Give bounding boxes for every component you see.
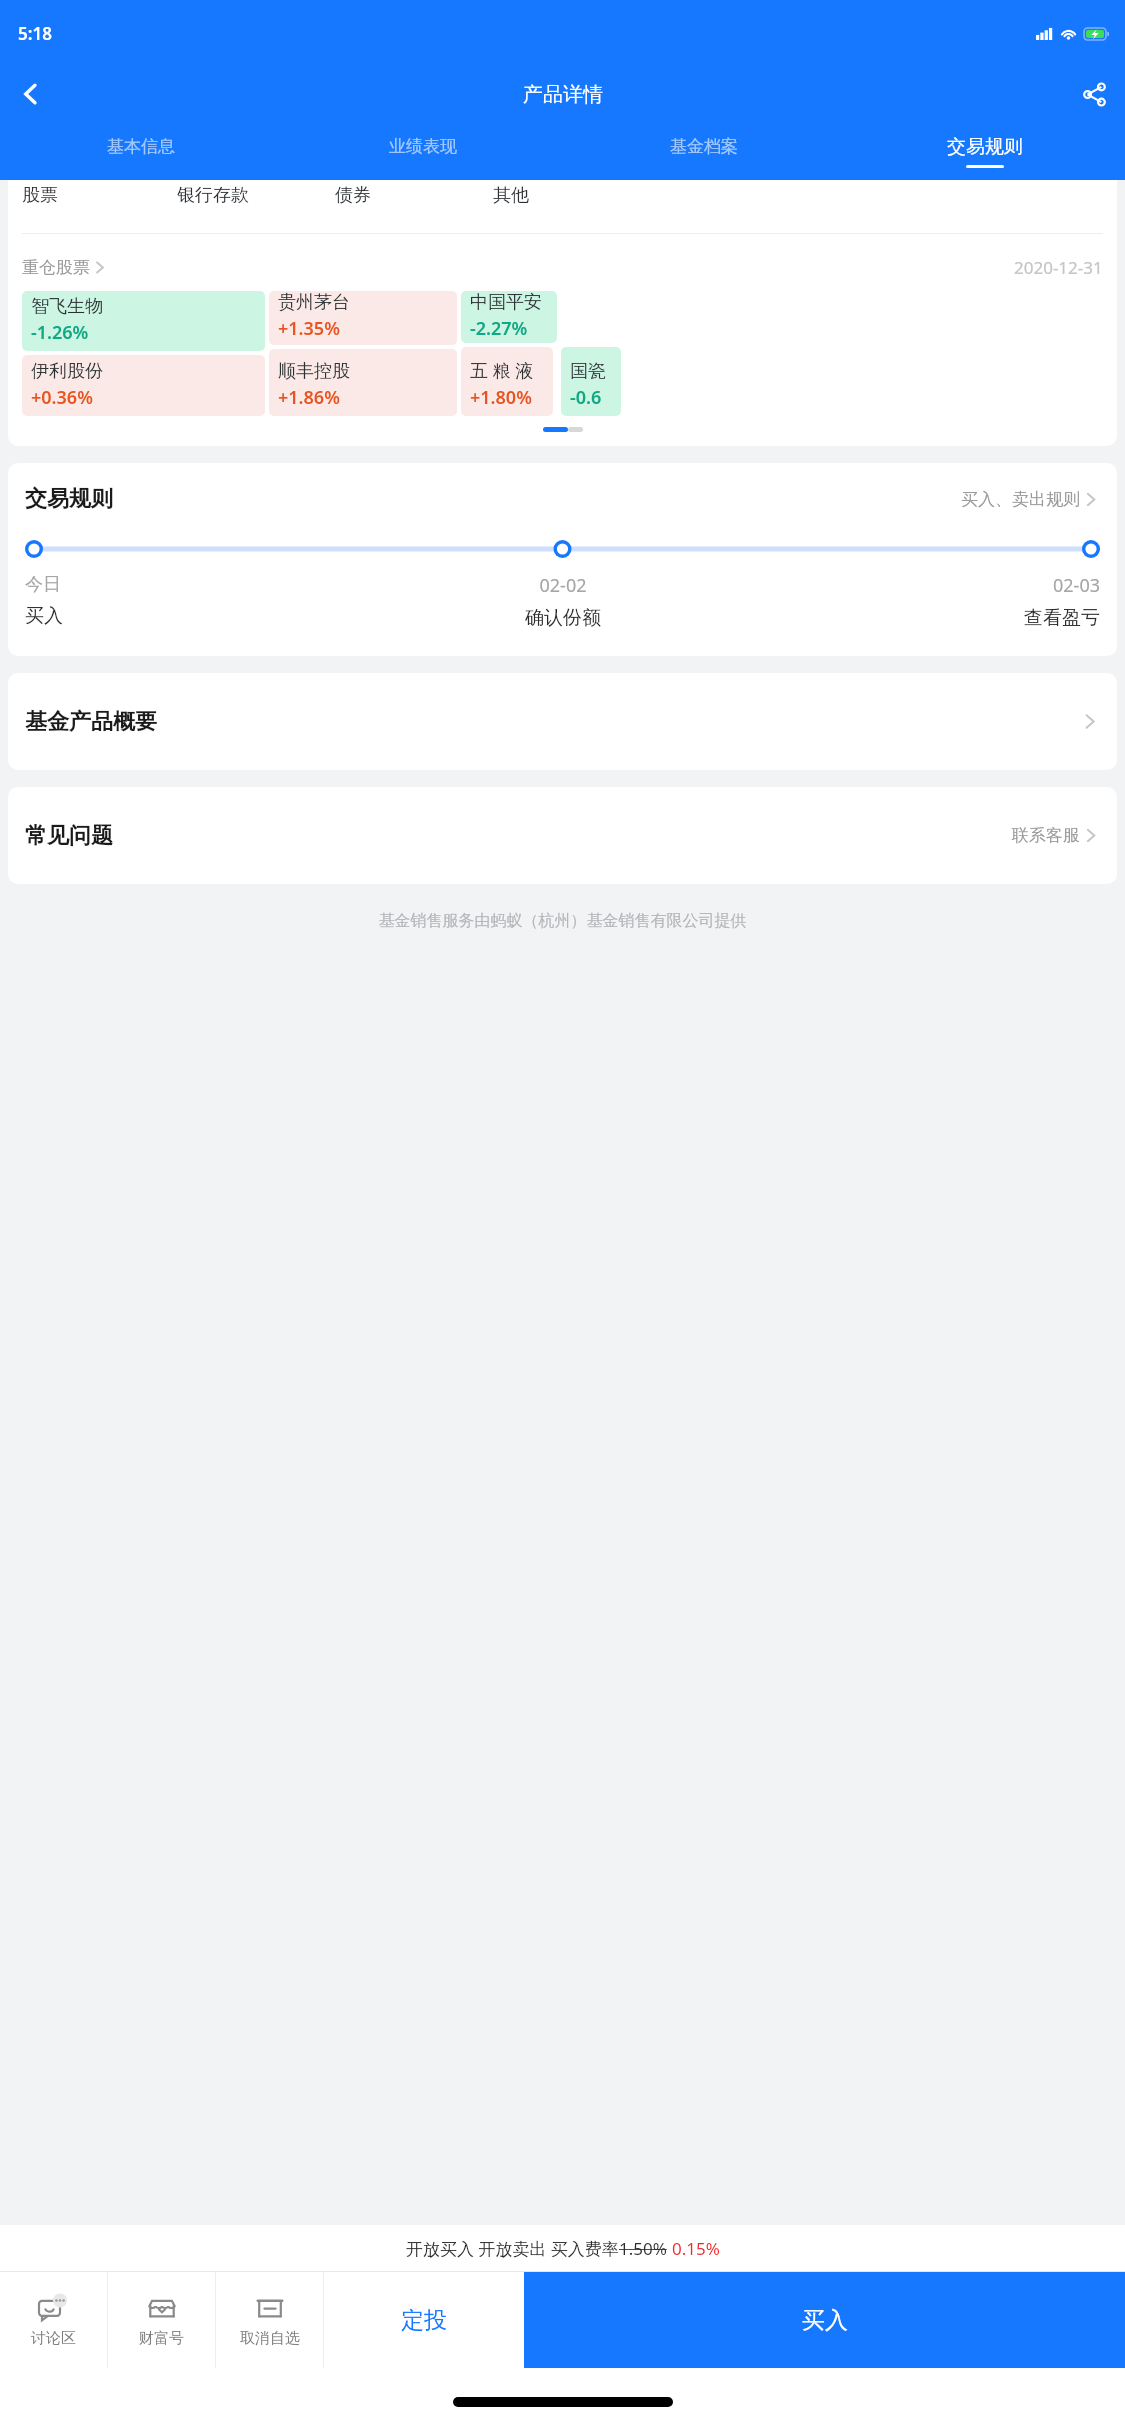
- staticText: 联系客服: [1012, 825, 1080, 846]
- staticText: 重仓股票: [22, 257, 90, 278]
- staticText: 讨论区: [31, 2329, 76, 2348]
- button[interactable]: 财富号: [108, 2272, 215, 2368]
- staticText: -2.27%: [470, 316, 528, 337]
- button[interactable]: 国瓷: [561, 347, 621, 416]
- staticText: 财富号: [139, 2329, 184, 2348]
- staticText: 取消自选: [240, 2329, 300, 2348]
- staticText: 顺丰控股: [278, 360, 350, 383]
- staticText: 五 粮 液: [470, 358, 534, 383]
- button[interactable]: 基金产品概要: [8, 673, 1117, 770]
- staticText: 02-02: [384, 573, 742, 598]
- button[interactable]: 顺丰控股: [269, 349, 457, 416]
- staticText: 基本信息: [107, 136, 175, 157]
- button[interactable]: 讨论区: [0, 2272, 107, 2368]
- staticText: 查看盈亏: [742, 606, 1100, 630]
- staticText: +0.36%: [31, 385, 93, 410]
- staticText: 产品详情: [523, 82, 603, 107]
- staticText: 买入: [802, 2306, 848, 2335]
- button[interactable]: 中国平安: [461, 291, 557, 343]
- button[interactable]: 智飞生物: [22, 291, 265, 351]
- staticText: 基金档案: [670, 136, 738, 157]
- button[interactable]: 交易规则: [844, 122, 1125, 180]
- staticText: 智飞生物: [31, 295, 103, 318]
- staticText: 定投: [401, 2306, 447, 2335]
- staticText: 基金销售服务由蚂蚁（杭州）基金销售有限公司提供: [0, 911, 1125, 931]
- button[interactable]: 买入: [524, 2272, 1125, 2368]
- button[interactable]: 伊利股份: [22, 355, 265, 416]
- button[interactable]: 定投: [324, 2272, 524, 2368]
- button[interactable]: 基金档案: [563, 122, 844, 180]
- staticText: 买入、卖出规则: [961, 489, 1080, 510]
- staticText: 伊利股份: [31, 360, 103, 383]
- staticText: 0.15%: [672, 2237, 720, 2260]
- staticText: +1.35%: [278, 316, 340, 339]
- button[interactable]: 贵州茅台: [269, 291, 457, 345]
- staticText: 2020-12-31: [1014, 256, 1103, 279]
- staticText: 股票: [22, 184, 177, 207]
- staticText: 国瓷: [570, 360, 606, 383]
- staticText: -1.26%: [31, 320, 89, 345]
- staticText: 银行存款: [177, 184, 335, 207]
- staticText: +1.80%: [470, 385, 532, 410]
- staticText: 其他: [493, 184, 529, 207]
- staticText: 债券: [335, 184, 493, 207]
- button[interactable]: 基本信息: [0, 122, 282, 180]
- staticText: 5:18: [18, 22, 52, 45]
- staticText: 今日: [25, 573, 384, 596]
- staticText: 贵州茅台: [278, 291, 350, 314]
- staticText: 买入: [25, 604, 384, 628]
- staticText: 基金产品概要: [25, 708, 157, 736]
- staticText: 业绩表现: [389, 136, 457, 157]
- staticText: 交易规则: [25, 485, 113, 513]
- button[interactable]: Share: [1063, 66, 1125, 122]
- button[interactable]: 常见问题: [8, 787, 1117, 884]
- staticText: +1.86%: [278, 385, 340, 410]
- staticText: 常见问题: [25, 822, 113, 850]
- button[interactable]: 交易规则: [25, 485, 1100, 513]
- staticText: 中国平安: [470, 291, 542, 314]
- staticText: 02-03: [742, 573, 1100, 598]
- button[interactable]: 取消自选: [216, 2272, 323, 2368]
- button[interactable]: Back: [0, 66, 62, 122]
- button[interactable]: 五 粮 液: [461, 347, 553, 416]
- button[interactable]: 重仓股票: [22, 256, 1103, 279]
- button[interactable]: 业绩表现: [282, 122, 563, 180]
- staticText: 开放买入 开放卖出 买入费率: [406, 2237, 619, 2260]
- staticText: 交易规则: [947, 135, 1023, 159]
- staticText: -0.6: [570, 385, 602, 410]
- staticText: 1.50%: [619, 2237, 667, 2260]
- staticText: 确认份额: [384, 606, 742, 630]
